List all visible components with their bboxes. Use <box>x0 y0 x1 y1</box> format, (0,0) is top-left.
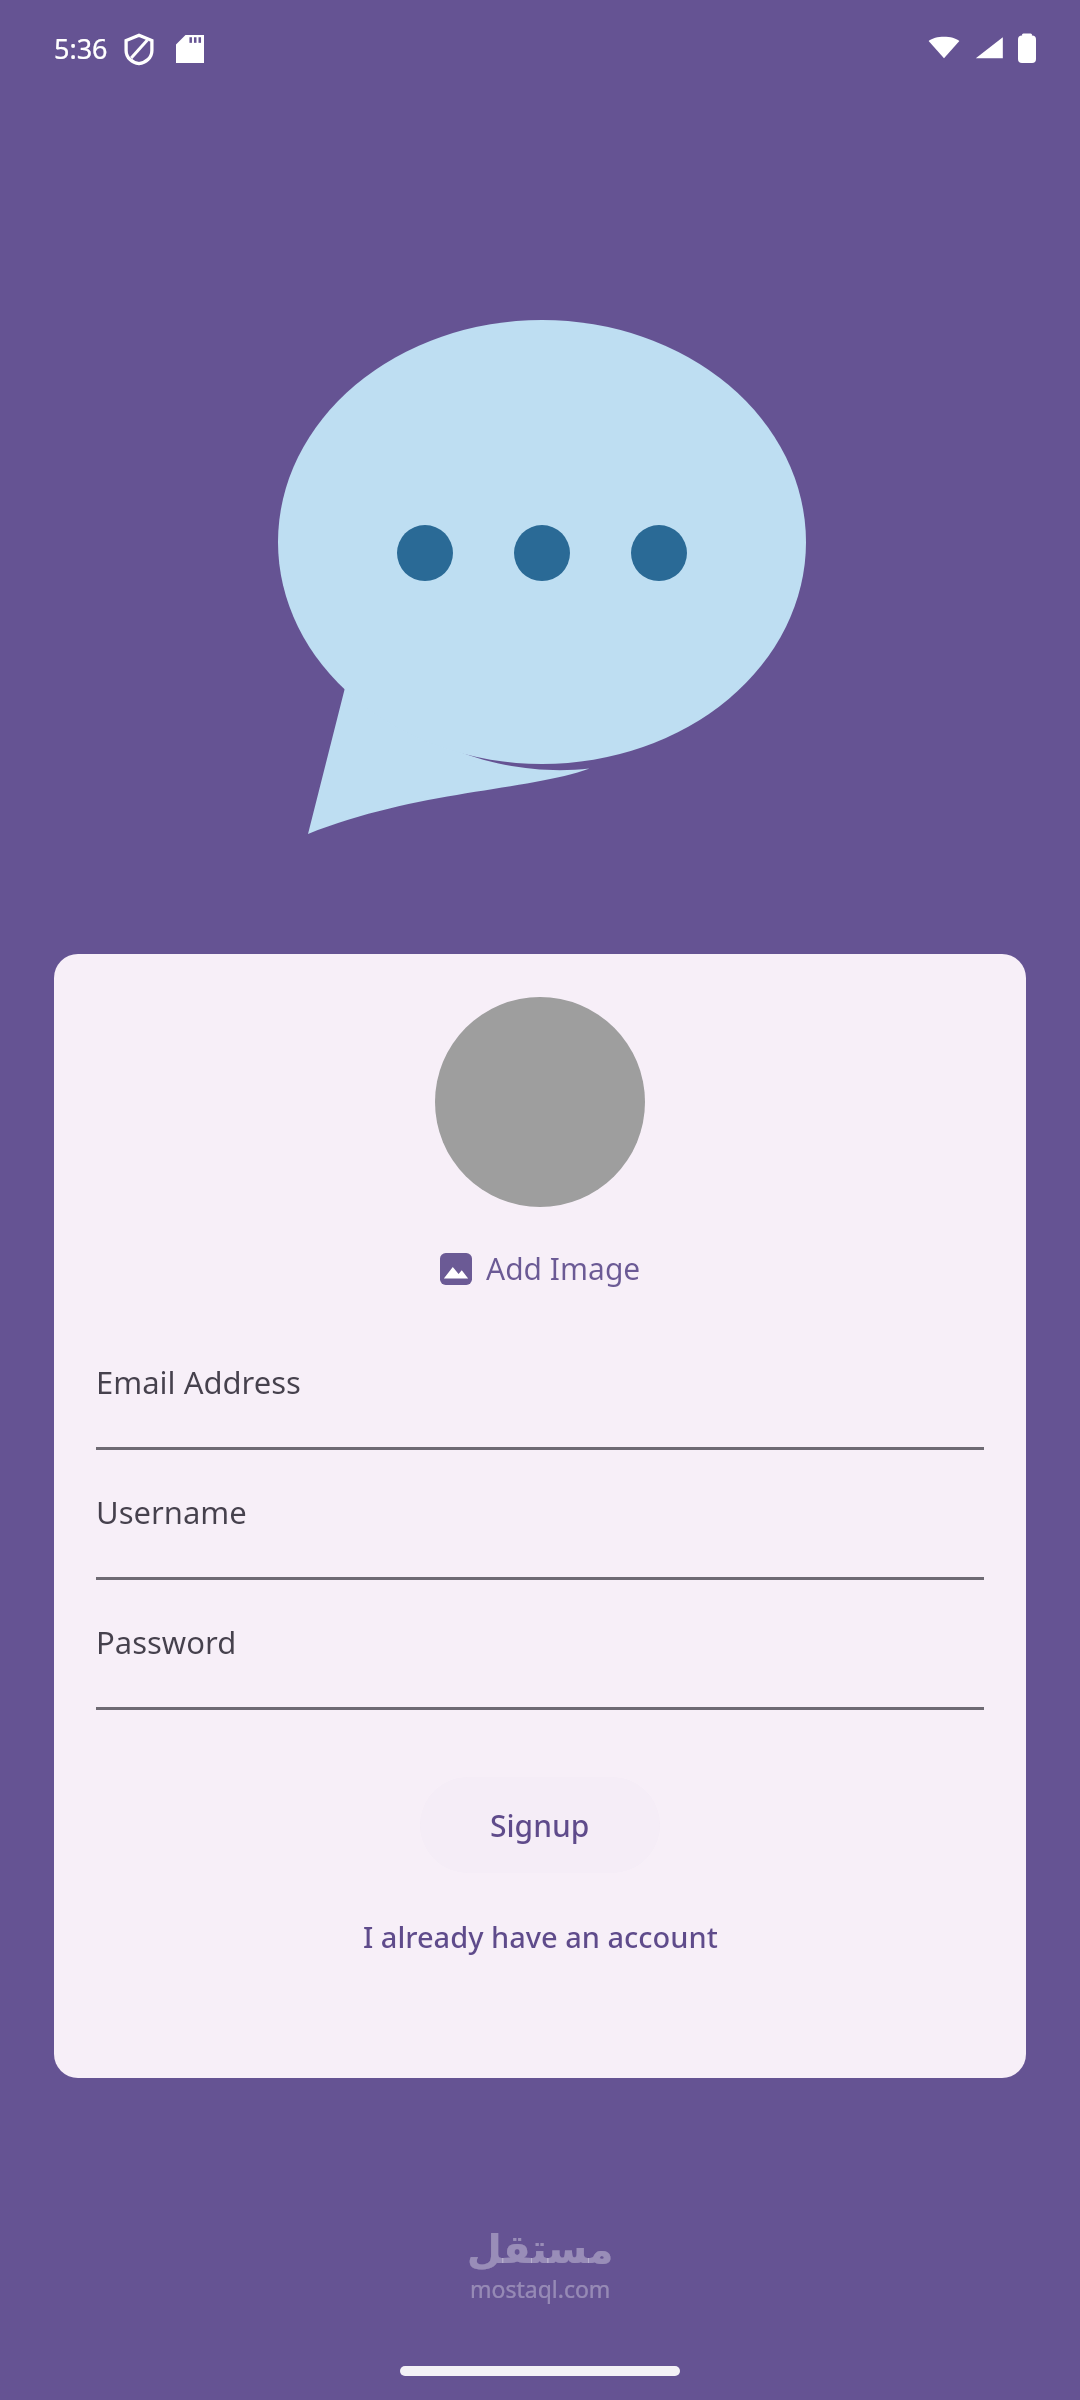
button[interactable]: Signup <box>420 1777 660 1873</box>
staticText: مستقل <box>467 2226 614 2273</box>
staticText: Add Image <box>486 1248 641 1289</box>
staticText: mostaql.com <box>470 2273 611 2304</box>
button[interactable]: I already have an account <box>347 1909 734 1964</box>
button[interactable]: Email Address <box>96 1347 984 1477</box>
button[interactable]: Add Image <box>428 1242 653 1295</box>
button[interactable]: Profile photo <box>435 997 645 1207</box>
staticText: 5:36 <box>54 30 108 67</box>
staticText: Username <box>96 1491 247 1533</box>
staticText: Password <box>96 1621 237 1663</box>
button[interactable]: Password <box>96 1607 984 1737</box>
button[interactable]: Username <box>96 1477 984 1607</box>
staticText: Email Address <box>96 1361 301 1403</box>
staticText: Signup <box>490 1805 590 1846</box>
staticText: I already have an account <box>363 1917 718 1956</box>
